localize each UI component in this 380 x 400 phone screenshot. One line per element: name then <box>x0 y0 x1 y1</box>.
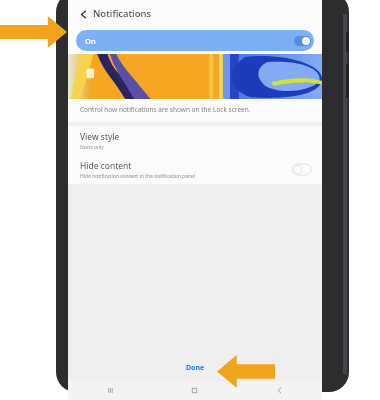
staticText: Icons only <box>80 144 104 151</box>
button[interactable]: Back <box>237 381 322 400</box>
button[interactable]: View style <box>68 126 322 155</box>
button[interactable]: On <box>76 30 314 51</box>
staticText: Hide notification content in the notific… <box>80 173 196 180</box>
button[interactable]: Done <box>174 359 217 377</box>
staticText: Hide content <box>80 160 132 172</box>
staticText: View style <box>80 131 120 143</box>
button[interactable]: Back <box>73 4 93 24</box>
button[interactable]: Recents <box>68 381 152 400</box>
staticText: Notifications <box>93 7 152 20</box>
staticText: On <box>85 36 96 46</box>
staticText: Control how notifications are shown on t… <box>80 105 251 114</box>
button[interactable]: Home <box>152 381 237 400</box>
staticText: Done <box>186 363 205 373</box>
button[interactable]: Hide content <box>68 155 322 184</box>
button[interactable]: Hide content toggle <box>292 164 311 175</box>
